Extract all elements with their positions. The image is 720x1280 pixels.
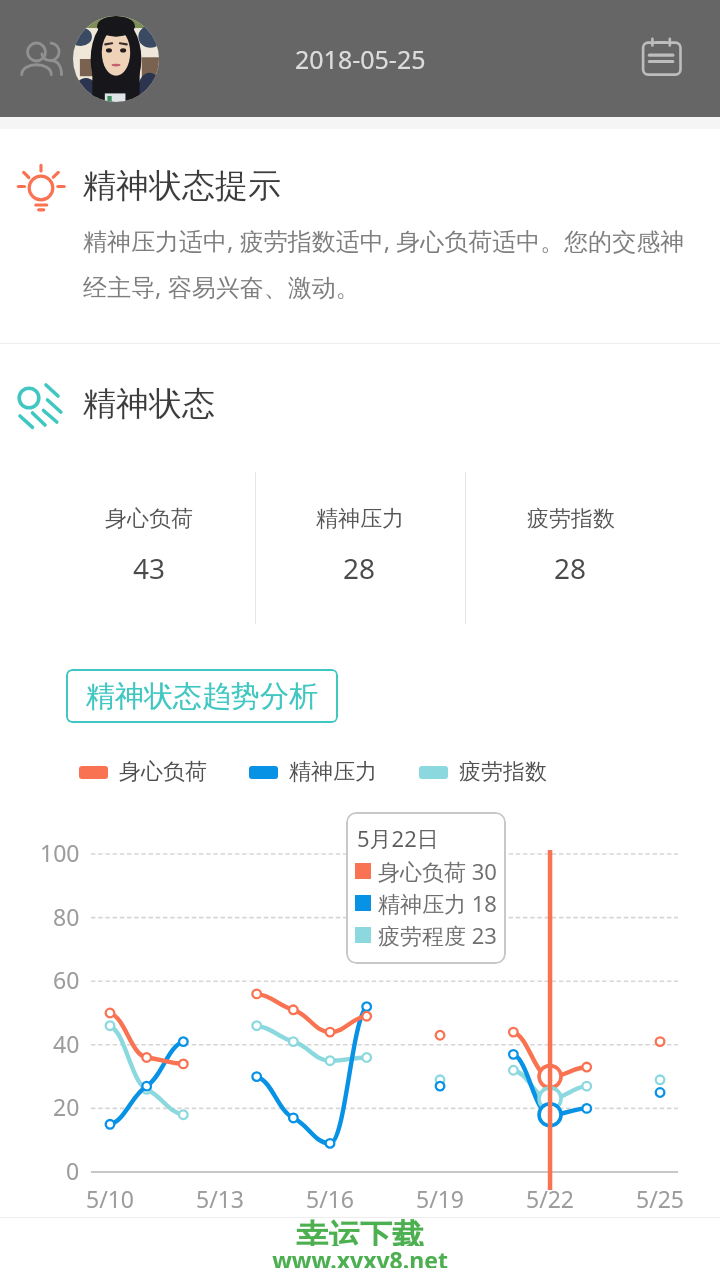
staticText: 43: [133, 549, 166, 587]
staticText: 身心负荷: [119, 758, 207, 786]
staticText: 100: [40, 837, 80, 868]
button[interactable]: 疲劳指数: [419, 758, 547, 786]
staticText: 精神压力: [316, 505, 404, 533]
staticText: 幸运下载: [296, 1216, 424, 1246]
button[interactable]: 精神压力: [249, 758, 377, 786]
staticText: 精神压力适中, 疲劳指数适中, 身心负荷适中。您的交感神 经主导, 容易兴奋、激…: [83, 224, 685, 303]
button[interactable]: Friends: [12, 29, 72, 89]
button[interactable]: Profile: [73, 16, 159, 102]
staticText: 身心负荷: [105, 505, 193, 533]
staticText: 80: [53, 901, 80, 932]
staticText: 5/13: [196, 1183, 245, 1214]
staticText: 疲劳指数: [527, 505, 615, 533]
staticText: 28: [343, 549, 376, 587]
staticText: 身心负荷 30: [378, 856, 497, 886]
button[interactable]: 身心负荷: [79, 758, 207, 786]
staticText: 精神压力 18: [378, 888, 497, 918]
staticText: 5/19: [416, 1183, 465, 1214]
staticText: 5/10: [86, 1183, 135, 1214]
button[interactable]: Records: [636, 32, 690, 86]
staticText: 精神压力: [289, 758, 377, 786]
staticText: 精神状态: [83, 383, 215, 425]
staticText: 40: [53, 1028, 80, 1059]
button[interactable]: 身心负荷: [44, 472, 254, 624]
staticText: 5/25: [636, 1183, 685, 1214]
staticText: 疲劳指数: [459, 758, 547, 786]
staticText: 60: [53, 964, 80, 995]
staticText: 精神状态提示: [83, 165, 281, 207]
staticText: 疲劳程度 23: [378, 920, 497, 950]
button[interactable]: 疲劳指数: [465, 472, 676, 624]
button[interactable]: 精神状态趋势分析: [66, 669, 338, 723]
staticText: www.xyxy8.net: [272, 1244, 448, 1268]
staticText: 2018-05-25: [295, 42, 426, 76]
staticText: 精神状态趋势分析: [86, 678, 318, 715]
staticText: 5/22: [526, 1183, 575, 1214]
staticText: 0: [66, 1155, 80, 1186]
staticText: 20: [53, 1091, 80, 1122]
staticText: 5月22日: [357, 823, 439, 853]
staticText: 28: [554, 549, 587, 587]
button[interactable]: 精神压力: [254, 472, 465, 624]
staticText: 5/16: [306, 1183, 355, 1214]
